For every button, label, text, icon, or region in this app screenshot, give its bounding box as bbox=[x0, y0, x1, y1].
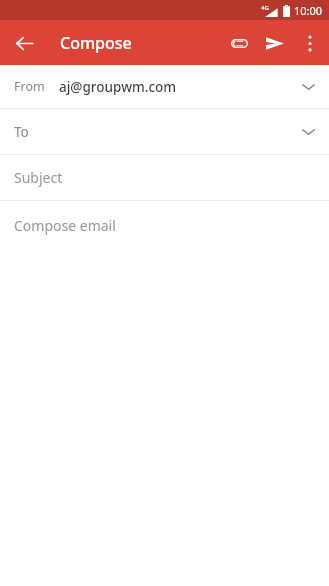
staticText: aj@groupwm.com bbox=[59, 78, 177, 96]
button[interactable]: Navigate up bbox=[6, 25, 42, 61]
staticText: From bbox=[14, 78, 45, 95]
button[interactable]: Compose email bbox=[0, 201, 329, 586]
button[interactable]: Subject bbox=[0, 155, 329, 200]
button[interactable]: Send bbox=[257, 25, 293, 61]
button[interactable]: Attach file bbox=[221, 25, 257, 61]
button[interactable]: From bbox=[0, 65, 329, 108]
staticText: 4G bbox=[261, 4, 269, 12]
button[interactable]: More options bbox=[293, 26, 327, 60]
button[interactable]: To bbox=[0, 109, 329, 154]
staticText: To bbox=[14, 123, 29, 141]
staticText: Subject bbox=[14, 168, 63, 187]
staticText: Compose bbox=[60, 32, 132, 54]
staticText: Compose email bbox=[14, 216, 116, 235]
staticText: 10:00 bbox=[294, 3, 323, 18]
